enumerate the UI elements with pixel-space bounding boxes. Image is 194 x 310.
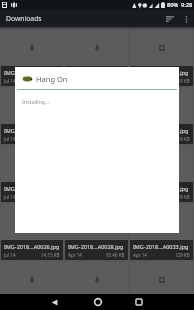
button[interactable]: IMG-2018...A0028.jpg [65, 262, 128, 310]
staticText: Jul 14 [4, 252, 16, 258]
button[interactable]: IMG-2018...A0033.jpg [130, 30, 193, 86]
staticText: 9:28 [181, 1, 193, 9]
staticText: IMG-2018...A0026.jpg [4, 69, 60, 76]
staticText: 95.46 KB [106, 252, 125, 258]
button[interactable]: IMG-2018...A0026.jpg [1, 146, 63, 202]
button[interactable]: IMG-2018...A0033.jpg [130, 146, 193, 202]
staticText: Jul 14 [4, 194, 16, 200]
button[interactable]: IMG-2018...A0026.jpg [1, 30, 63, 86]
staticText: 129 KB [175, 194, 190, 200]
staticText: IMG-2018...A0026.jpg [4, 127, 60, 134]
button[interactable]: IMG-2018...A0026.jpg [1, 262, 63, 310]
staticText: IMG-2018...A0033.jpg [133, 301, 189, 308]
button[interactable]: IMG-2018...A0028.jpg [65, 204, 128, 260]
button[interactable]: Back [51, 299, 67, 310]
staticText: Jul 14 [4, 136, 16, 142]
staticText: 129 KB [175, 136, 190, 142]
button[interactable]: IMG-2018...A0033.jpg [130, 262, 193, 310]
staticText: IMG-2018...A0026.jpg [4, 185, 60, 192]
button[interactable]: IMG-2018...A0026.jpg [1, 88, 63, 144]
staticText: Apr 14 [68, 252, 82, 258]
staticText: 80% [167, 1, 179, 9]
button[interactable]: Recent apps [135, 298, 151, 310]
staticText: IMG-2018...A0033.jpg [133, 69, 189, 76]
staticText: Hang On [36, 74, 68, 84]
staticText: IMG-2018...A0026.jpg [4, 301, 60, 308]
staticText: IMG-2018...A0028.jpg [68, 301, 124, 308]
button[interactable]: Home [94, 298, 110, 310]
staticText: Apr 14 [133, 252, 147, 258]
staticText: IMG-2018...A0033.jpg [133, 185, 189, 192]
staticText: 129 KB [175, 252, 190, 258]
button[interactable]: IMG-2018...A0026.jpg [1, 204, 63, 260]
button[interactable]: IMG-2018...A0033.jpg [130, 88, 193, 144]
staticText: 14.15 KB [41, 252, 60, 258]
staticText: IMG-2018...A0026.jpg [4, 243, 60, 250]
button[interactable]: IMG-2018...A0033.jpg [130, 204, 193, 260]
button[interactable]: IMG-2018...A0028.jpg [65, 30, 128, 86]
staticText: Jul 14 [4, 78, 16, 84]
staticText: IMG-2018...A0033.jpg [133, 127, 189, 134]
staticText: IMG-2018...A0033.jpg [133, 243, 189, 250]
button[interactable]: Sort [162, 11, 178, 27]
staticText: 14.15 KB [41, 78, 60, 84]
staticText: 129 KB [175, 78, 190, 84]
staticText: IMG-2018...A0028.jpg [68, 243, 124, 250]
staticText: Downloads [6, 14, 42, 23]
button[interactable]: IMG-2018...A0028.jpg [65, 88, 128, 144]
staticText: Installing... [22, 98, 50, 105]
button[interactable]: More options [178, 11, 194, 27]
